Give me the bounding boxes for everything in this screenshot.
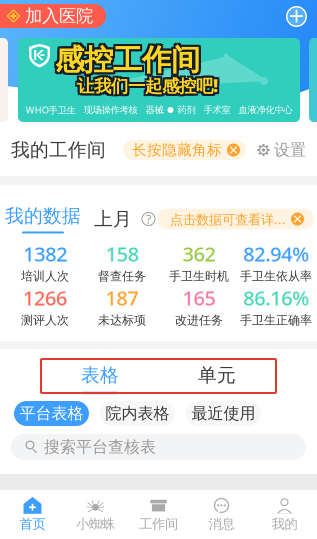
button[interactable]: 平台表格 [14, 401, 89, 426]
button[interactable]: 165 [160, 288, 237, 324]
staticText: 加入医院 [25, 5, 93, 27]
staticText: 器械 [145, 104, 163, 116]
staticText: 感控工作间 [53, 44, 198, 80]
staticText: 86.16% [243, 284, 309, 311]
staticText: 现场操作考核 [83, 104, 137, 116]
staticText: 让我们一起感控吧! [79, 74, 220, 97]
staticText: 最近使用 [191, 404, 255, 423]
staticText: 首页 [19, 516, 45, 532]
button[interactable]: 362 [160, 244, 237, 280]
staticText: 让我们一起感控吧! [77, 76, 218, 99]
staticText: 搜索平台查核表 [44, 437, 156, 457]
staticText: 小蜘蛛 [76, 516, 115, 532]
staticText: 督查任务 [98, 269, 146, 284]
button[interactable]: 消息 [190, 490, 253, 539]
button[interactable]: 1382 [6, 244, 83, 280]
staticText: 187 [105, 284, 138, 311]
button[interactable]: 上月 [81, 206, 134, 232]
staticText: 感控工作间 [55, 44, 200, 80]
button[interactable]: 表格 [41, 360, 158, 398]
staticText: 让我们一起感控吧! [75, 72, 216, 95]
staticText: 感控工作间 [57, 40, 202, 76]
staticText: 感控工作间 [57, 42, 202, 78]
staticText: 未达标项 [98, 313, 146, 328]
staticText: 手卫生正确率 [240, 313, 312, 328]
staticText: 设置 [274, 140, 306, 160]
staticText: 让我们一起感控吧! [79, 76, 220, 99]
button[interactable]: 小蜘蛛 [64, 490, 127, 539]
button[interactable]: 长按隐藏角标 [123, 140, 246, 160]
staticText: 上月 [94, 207, 132, 230]
staticText: 血液净化中心 [238, 104, 292, 116]
staticText: 单元 [198, 364, 236, 387]
button[interactable]: 1266 [6, 288, 83, 324]
button[interactable]: 加入医院 [0, 4, 106, 28]
staticText: 手术室 [203, 104, 230, 116]
staticText: 让我们一起感控吧! [79, 72, 220, 95]
staticText: 感控工作间 [53, 42, 198, 78]
staticText: 让我们一起感控吧! [77, 72, 218, 95]
staticText: ? [146, 211, 151, 227]
staticText: 我的数据 [5, 204, 81, 227]
button[interactable]: 工作间 [127, 490, 190, 539]
staticText: 我的工作间 [11, 138, 106, 161]
button[interactable]: 院内表格 [100, 401, 175, 426]
button[interactable]: 单元 [158, 360, 275, 398]
staticText: 手卫生时机 [169, 269, 229, 284]
staticText: 82.94% [243, 240, 309, 267]
button[interactable]: 点击数据可查看详情 [157, 208, 314, 229]
button[interactable]: 最近使用 [186, 401, 261, 426]
staticText: 院内表格 [105, 404, 169, 423]
button[interactable]: Add [286, 6, 307, 27]
staticText: 让我们一起感控吧! [75, 76, 216, 99]
staticText: 感控工作间 [55, 40, 200, 76]
button[interactable]: 187 [83, 288, 160, 324]
staticText: 平台表格 [19, 404, 83, 423]
staticText: 感控工作间 [57, 44, 202, 80]
staticText: 让我们一起感控吧! [77, 74, 218, 97]
staticText: 我的 [271, 516, 297, 532]
staticText: 改进任务 [175, 313, 223, 328]
button[interactable]: Help [134, 212, 155, 225]
staticText: 1382 [23, 240, 67, 267]
staticText: 培训人次 [21, 269, 69, 284]
button[interactable]: 我的数据 [5, 206, 81, 232]
button[interactable]: 86.16% [237, 288, 314, 324]
button[interactable]: 158 [83, 244, 160, 280]
button[interactable]: 设置 [246, 140, 306, 160]
button[interactable]: 首页 [1, 490, 64, 539]
staticText: 1266 [23, 284, 67, 311]
staticText: 362 [182, 240, 215, 267]
staticText: 点击数据可查看详情 [170, 210, 286, 228]
staticText: 长按隐藏角标 [132, 141, 222, 159]
staticText: 测评人次 [21, 313, 69, 328]
staticText: 感控工作间 [53, 40, 198, 76]
staticText: 158 [105, 240, 138, 267]
staticText: WHO手卫生 [25, 104, 75, 116]
staticText: 让我们一起感控吧! [75, 74, 216, 97]
staticText: 消息 [208, 516, 234, 532]
staticText: 手卫生依从率 [240, 269, 312, 284]
staticText: 表格 [81, 364, 119, 387]
staticText: 165 [182, 284, 215, 311]
staticText: 药剂 [177, 104, 195, 116]
staticText: 工作间 [139, 516, 178, 532]
button[interactable]: 82.94% [237, 244, 314, 280]
staticText: 感控工作间 [55, 42, 200, 78]
button[interactable]: 我的 [253, 490, 316, 539]
